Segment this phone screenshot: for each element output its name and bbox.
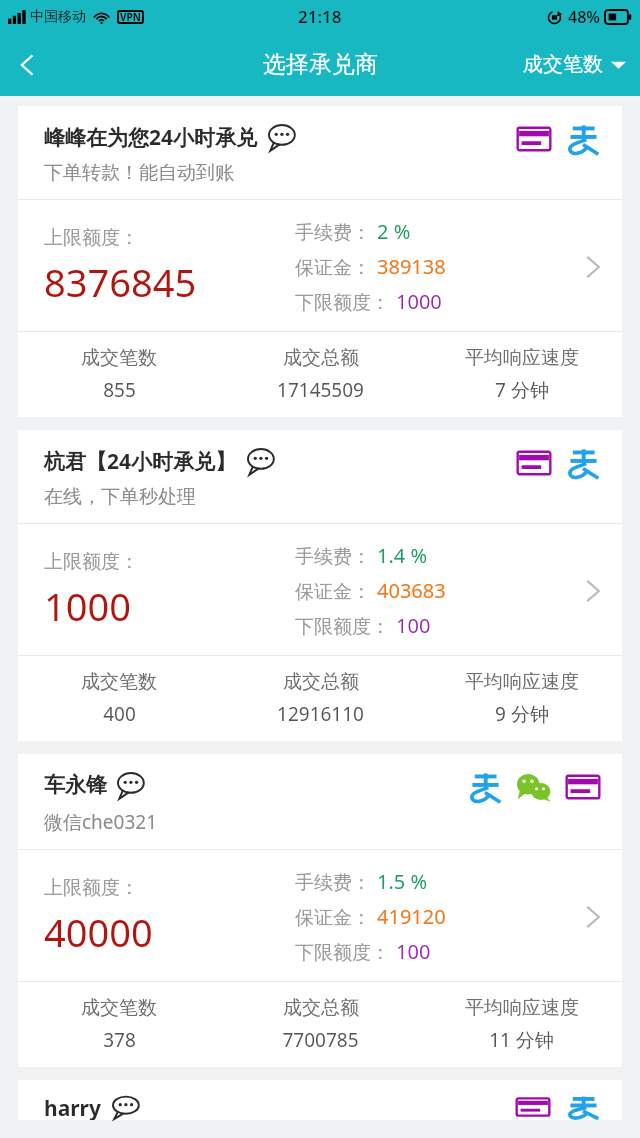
staticText: 成交笔数	[81, 996, 157, 1020]
button[interactable]: 成交笔数	[509, 42, 640, 87]
staticText: 微信che0321	[44, 809, 158, 835]
staticText: 389138	[377, 253, 446, 280]
other: 银行卡	[517, 446, 551, 480]
staticText: 855	[103, 377, 136, 403]
staticText: 2 %	[377, 218, 411, 245]
staticText: 100	[396, 938, 431, 965]
staticText: 车永锋	[44, 772, 107, 798]
staticText: 选择承兑商	[263, 50, 378, 79]
staticText: 中国移动	[30, 8, 86, 26]
other: 支付宝	[468, 770, 502, 804]
staticText: 7700785	[282, 1027, 359, 1053]
staticText: 保证金：	[295, 580, 371, 604]
other: 支付宝	[566, 122, 600, 156]
staticText: harry	[44, 1094, 101, 1120]
staticText: 9 分钟	[495, 701, 549, 727]
staticText: 峰峰在为您24小时承兑	[44, 123, 258, 152]
staticText: 1000	[44, 580, 131, 632]
button[interactable]: 杭君【24小时承兑】	[18, 430, 622, 741]
staticText: 403683	[377, 577, 446, 604]
button[interactable]: 峰峰在为您24小时承兑	[18, 106, 622, 417]
other: 银行卡	[517, 122, 551, 156]
staticText: 下单转款！能自动到账	[44, 161, 234, 185]
staticText: 上限额度：	[44, 226, 139, 250]
staticText: 平均响应速度	[465, 996, 579, 1020]
staticText: 成交总额	[283, 670, 359, 694]
staticText: 手续费：	[295, 221, 371, 245]
staticText: 平均响应速度	[465, 670, 579, 694]
staticText: VPN	[120, 10, 141, 24]
staticText: 在线，下单秒处理	[44, 485, 196, 509]
staticText: 上限额度：	[44, 876, 139, 900]
staticText: 11 分钟	[489, 1027, 554, 1053]
staticText: 1.4 %	[377, 542, 428, 569]
button[interactable]: 返回	[0, 37, 56, 93]
staticText: 成交总额	[283, 996, 359, 1020]
staticText: 成交总额	[283, 346, 359, 370]
button[interactable]: harry	[18, 1080, 622, 1120]
staticText: 1000	[396, 288, 442, 315]
staticText: 100	[396, 612, 431, 639]
staticText: 手续费：	[295, 545, 371, 569]
staticText: 21:18	[298, 5, 342, 28]
staticText: 419120	[377, 903, 446, 930]
other: 支付宝	[566, 446, 600, 480]
staticText: 40000	[44, 906, 153, 958]
staticText: 平均响应速度	[465, 346, 579, 370]
staticText: 378	[103, 1027, 136, 1053]
staticText: 杭君【24小时承兑】	[44, 447, 237, 476]
staticText: 8376845	[44, 256, 197, 308]
staticText: 下限额度：	[295, 291, 390, 315]
other: 微信	[517, 770, 551, 804]
other: 银行卡	[516, 1094, 550, 1120]
staticText: 12916110	[277, 701, 364, 727]
staticText: 1.5 %	[377, 868, 428, 895]
staticText: 7 分钟	[495, 377, 549, 403]
staticText: 48%	[568, 6, 600, 28]
staticText: 成交笔数	[81, 670, 157, 694]
staticText: 400	[103, 701, 136, 727]
other: 银行卡	[566, 770, 600, 804]
staticText: 成交笔数	[81, 346, 157, 370]
staticText: 17145509	[277, 377, 364, 403]
other: 支付宝	[566, 1094, 600, 1120]
staticText: 手续费：	[295, 871, 371, 895]
staticText: 上限额度：	[44, 550, 139, 574]
staticText: 下限额度：	[295, 615, 390, 639]
button[interactable]: 车永锋	[18, 754, 622, 1067]
staticText: 保证金：	[295, 256, 371, 280]
staticText: 成交笔数	[523, 52, 603, 77]
staticText: 保证金：	[295, 906, 371, 930]
staticText: 下限额度：	[295, 941, 390, 965]
